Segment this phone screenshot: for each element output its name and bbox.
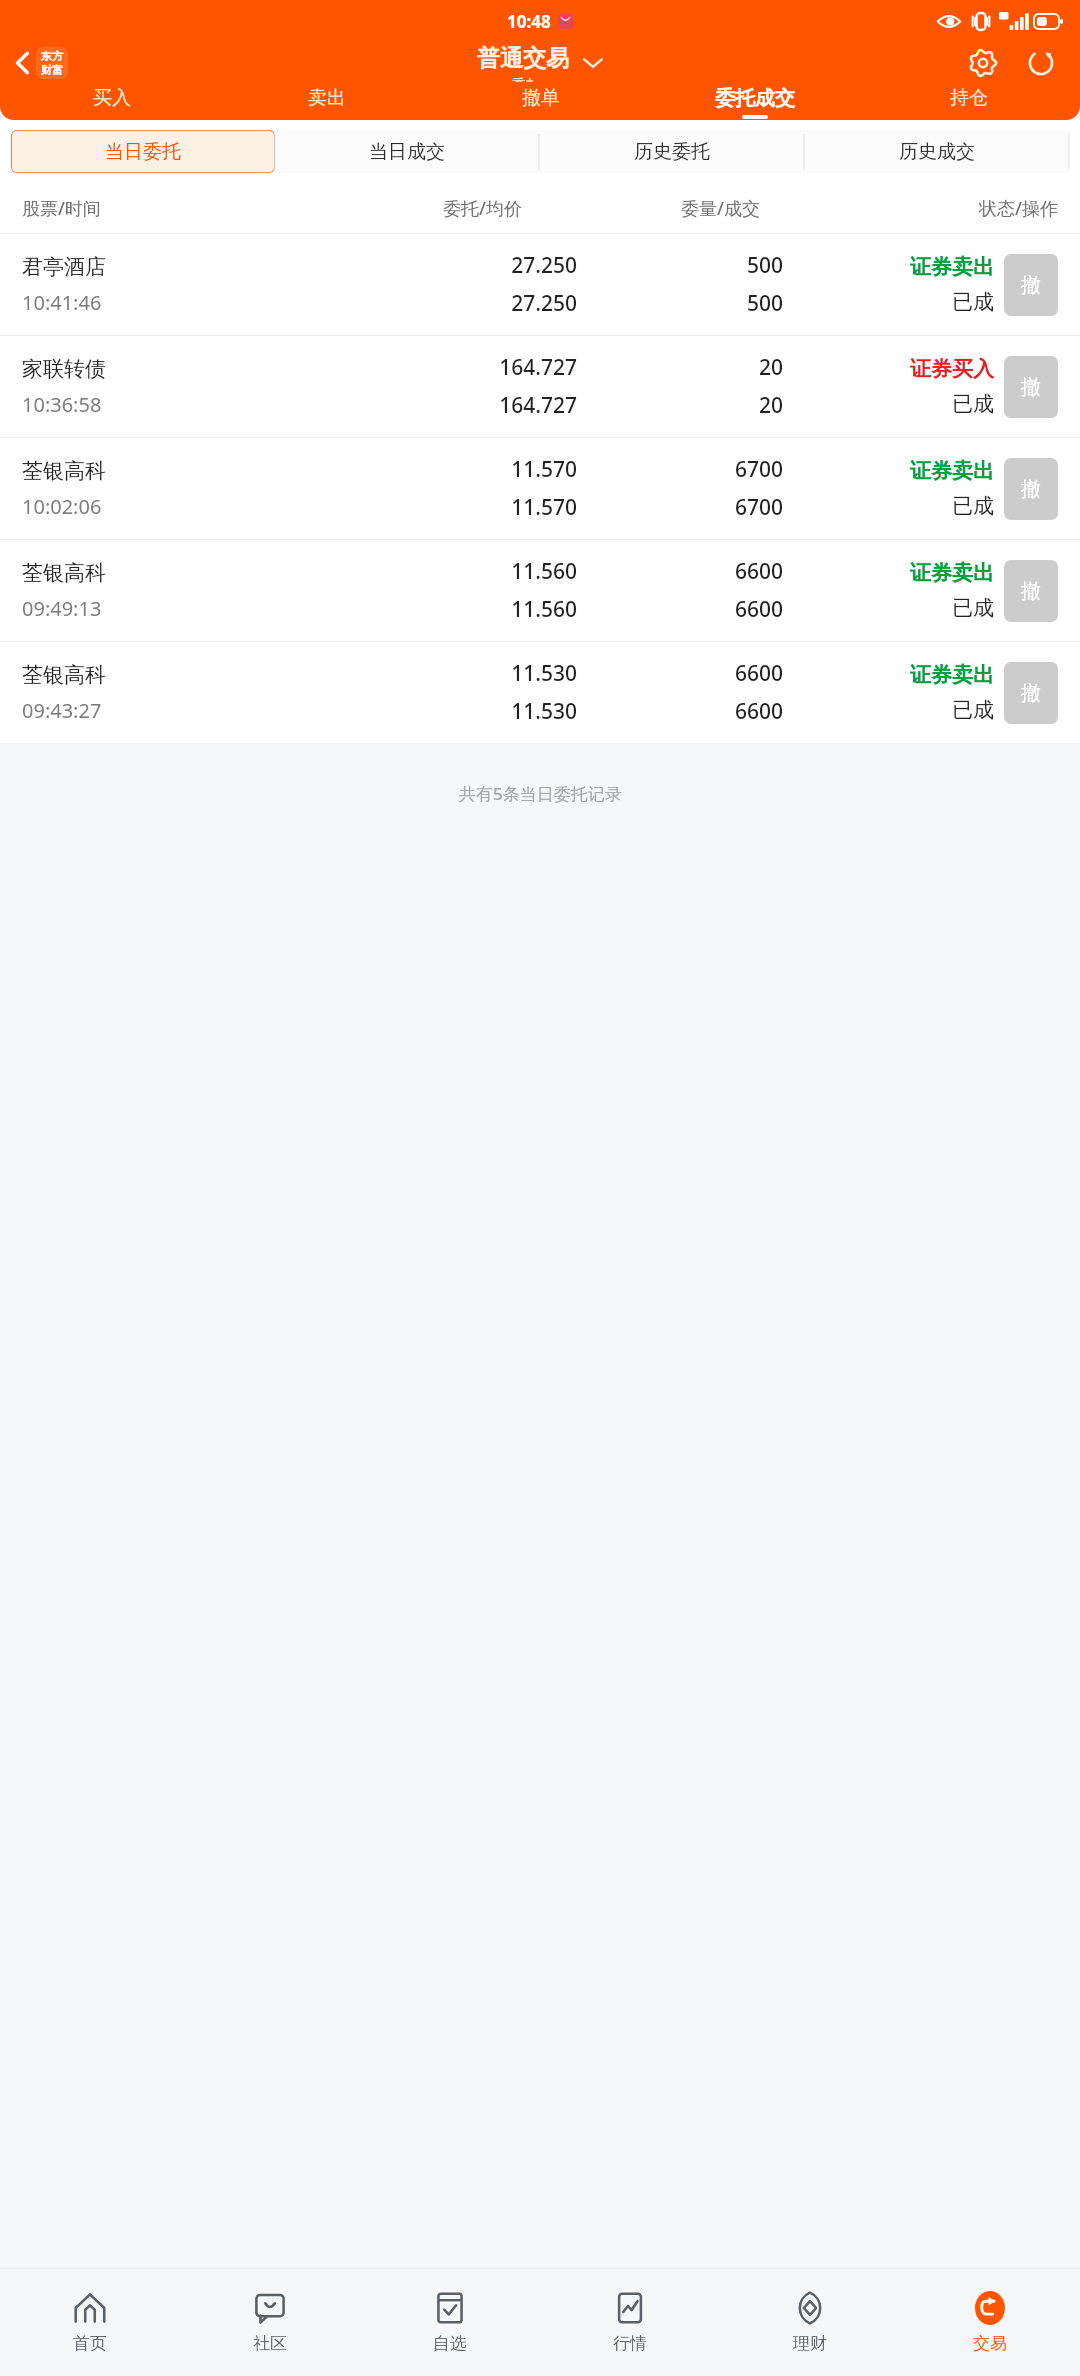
staticText: 10:02:06 xyxy=(22,493,102,520)
button[interactable]: 理财 xyxy=(720,2269,900,2376)
staticText: 持仓 xyxy=(950,86,988,110)
staticText: 11.570 xyxy=(511,455,577,484)
staticText: 11.530 xyxy=(511,659,577,688)
staticText: 20 xyxy=(758,391,783,420)
button[interactable]: 返回 东方财富 xyxy=(10,43,74,83)
staticText: 证券卖出 xyxy=(910,662,994,688)
staticText: 理财 xyxy=(793,2333,827,2354)
staticText: 委量/成交 xyxy=(522,196,760,221)
staticText: 当日委托 xyxy=(105,140,181,164)
staticText: 行情 xyxy=(613,2333,647,2354)
staticText: 撤 xyxy=(1021,375,1041,400)
button[interactable]: 首页 xyxy=(0,2269,180,2376)
button[interactable]: 行情 xyxy=(540,2269,720,2376)
staticText: 6700 xyxy=(734,455,783,484)
staticText: 买入 xyxy=(93,86,131,110)
button[interactable]: 撤 xyxy=(1004,254,1058,316)
staticText: 10:41:46 xyxy=(22,289,102,316)
button[interactable]: 撤 xyxy=(1004,560,1058,622)
staticText: 共有5条当日委托记录 xyxy=(459,782,622,805)
staticText: 500 xyxy=(746,289,783,318)
staticText: 证券卖出 xyxy=(910,560,994,586)
staticText: 股票/时间 xyxy=(22,196,272,221)
button[interactable]: 刷新 xyxy=(1020,42,1062,84)
button[interactable]: 卖出 xyxy=(219,84,434,120)
staticText: 09:49:13 xyxy=(22,595,102,622)
staticText: 委托/均价 xyxy=(272,196,522,221)
button[interactable]: 社区 xyxy=(180,2269,360,2376)
staticText: 君亭酒店 xyxy=(22,254,106,280)
staticText: 自选 xyxy=(433,2333,467,2354)
button[interactable]: 撤单 xyxy=(434,84,648,120)
staticText: 已成 xyxy=(952,697,994,723)
staticText: 6600 xyxy=(734,557,783,586)
staticText: 撤 xyxy=(1021,273,1041,298)
staticText: 已成 xyxy=(952,493,994,519)
staticText: 6600 xyxy=(734,595,783,624)
button[interactable]: 荃银高科 xyxy=(0,642,1080,743)
staticText: 证券卖出 xyxy=(910,458,994,484)
staticText: 荃银高科 xyxy=(22,662,106,688)
staticText: 撤 xyxy=(1021,681,1041,706)
button[interactable]: 君亭酒店 xyxy=(0,234,1080,335)
staticText: 东方 xyxy=(41,49,63,63)
button[interactable]: 设置 xyxy=(962,42,1004,84)
button[interactable]: 家联转债 xyxy=(0,336,1080,437)
staticText: 09:43:27 xyxy=(22,697,102,724)
staticText: 11.560 xyxy=(511,557,577,586)
staticText: 6700 xyxy=(734,493,783,522)
staticText: 社区 xyxy=(253,2333,287,2354)
button[interactable]: 交易 xyxy=(900,2269,1080,2376)
staticText: 11.560 xyxy=(511,595,577,624)
button[interactable]: 历史委托 xyxy=(539,130,804,173)
button[interactable]: 买入 xyxy=(4,84,219,120)
staticText: 历史委托 xyxy=(634,140,710,164)
staticText: 11.570 xyxy=(511,493,577,522)
staticText: 家联转债 xyxy=(22,356,106,382)
button[interactable]: 当日成交 xyxy=(275,130,539,173)
staticText: 20 xyxy=(758,353,783,382)
staticText: 撤单 xyxy=(522,86,560,110)
staticText: 500 xyxy=(746,251,783,280)
button[interactable]: 撤 xyxy=(1004,356,1058,418)
staticText: 当日成交 xyxy=(369,140,445,164)
staticText: 已成 xyxy=(952,289,994,315)
button[interactable]: 委托成交 xyxy=(648,84,862,120)
staticText: 164.727 xyxy=(499,391,577,420)
staticText: 状态/操作 xyxy=(760,196,1058,221)
staticText: 历史成交 xyxy=(899,140,975,164)
staticText: 证券买入 xyxy=(910,356,994,382)
button[interactable]: 撤 xyxy=(1004,662,1058,724)
staticText: 6600 xyxy=(734,697,783,726)
button[interactable]: 撤 xyxy=(1004,458,1058,520)
staticText: 荃银高科 xyxy=(22,560,106,586)
staticText: 首页 xyxy=(73,2333,107,2354)
button[interactable]: 荃银高科 xyxy=(0,540,1080,641)
staticText: 10:36:58 xyxy=(22,391,102,418)
staticText: 卖出 xyxy=(308,86,346,110)
staticText: 普通交易 xyxy=(477,44,569,73)
staticText: 6600 xyxy=(734,659,783,688)
staticText: 10:48 xyxy=(507,10,551,33)
staticText: 财富 xyxy=(41,63,63,77)
button[interactable]: 持仓 xyxy=(862,84,1076,120)
staticText: 交易 xyxy=(973,2333,1007,2354)
button[interactable]: 荃银高科 xyxy=(0,438,1080,539)
staticText: 164.727 xyxy=(499,353,577,382)
staticText: 撤 xyxy=(1021,477,1041,502)
button[interactable]: 历史成交 xyxy=(804,130,1069,173)
button[interactable]: 自选 xyxy=(360,2269,540,2376)
button[interactable]: 普通交易 xyxy=(469,42,611,84)
staticText: 证券卖出 xyxy=(910,254,994,280)
staticText: 委托成交 xyxy=(715,86,795,111)
staticText: 27.250 xyxy=(511,289,577,318)
staticText: 已成 xyxy=(952,595,994,621)
staticText: 11.530 xyxy=(511,697,577,726)
button[interactable]: 当日委托 xyxy=(11,130,275,173)
staticText: 已成 xyxy=(952,391,994,417)
staticText: 荃银高科 xyxy=(22,458,106,484)
staticText: 撤 xyxy=(1021,579,1041,604)
staticText: 27.250 xyxy=(511,251,577,280)
staticText: 季* xyxy=(512,74,534,82)
